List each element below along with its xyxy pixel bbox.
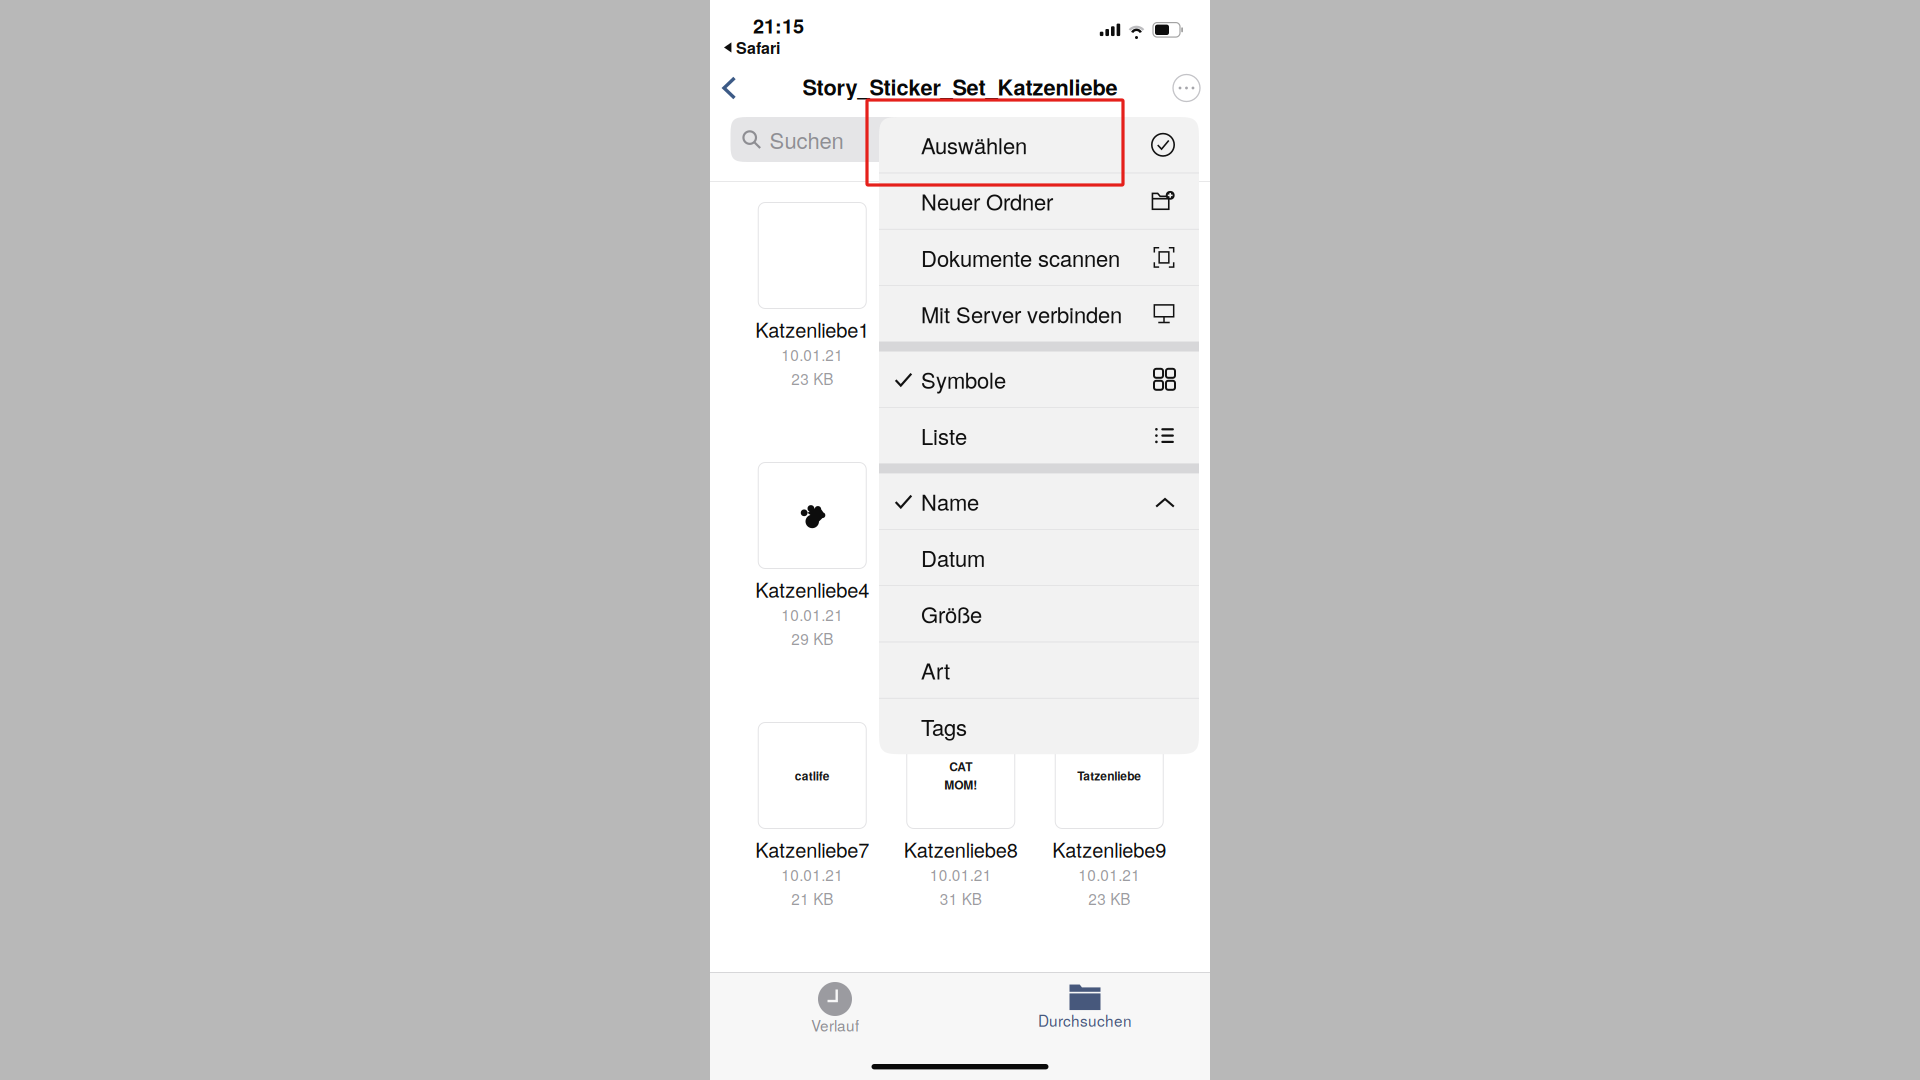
- staticText: Symbole: [921, 363, 1006, 395]
- button[interactable]: Katzenliebe1: [738, 202, 886, 462]
- staticText: Dokumente scannen: [921, 242, 1120, 273]
- staticText: 10.01.21: [781, 343, 843, 365]
- staticText: Durchsuchen: [1038, 1009, 1132, 1031]
- button[interactable]: catlife: [738, 722, 886, 982]
- staticText: 10.01.21: [930, 603, 992, 625]
- staticText: 21:15: [753, 11, 804, 40]
- staticText: Name: [921, 485, 979, 517]
- staticText: Tags: [921, 711, 967, 742]
- staticText: 23 KB: [1088, 887, 1130, 909]
- staticText: 10.01.21: [930, 343, 992, 365]
- button[interactable]: Mit Server verbinden: [879, 286, 1199, 341]
- staticText: 31 KB: [940, 887, 982, 909]
- button[interactable]: Dokumente scannen: [879, 230, 1199, 285]
- button[interactable]: Katzenliebe6: [1035, 462, 1183, 722]
- button[interactable]: Suchen: [730, 117, 1189, 162]
- staticText: Tatzenliebe: [1077, 767, 1141, 784]
- button[interactable]: Katzenliebe2: [886, 202, 1035, 462]
- staticText: 10.01.21: [1078, 343, 1140, 365]
- button[interactable]: Katzenliebe4: [738, 462, 886, 722]
- staticText: Katzenliebe7: [755, 835, 869, 863]
- staticText: Katzenliebe2: [904, 315, 1018, 343]
- button[interactable]: Datum: [879, 530, 1199, 585]
- button[interactable]: Durchsuchen: [960, 982, 1210, 1052]
- button[interactable]: Auswählen: [879, 117, 1199, 173]
- staticText: Story_Sticker_Set_Katzenliebe: [802, 71, 1117, 102]
- button[interactable]: Katzenliebe5: [886, 462, 1035, 722]
- staticText: Verlauf: [811, 1014, 859, 1036]
- staticText: 10.01.21: [930, 863, 992, 885]
- button[interactable]: Größe: [879, 586, 1199, 642]
- staticText: CAT: [949, 758, 972, 775]
- button[interactable]: Name: [879, 473, 1199, 529]
- button[interactable]: Back: [710, 64, 758, 112]
- button[interactable]: Tatzenliebe: [1035, 722, 1183, 982]
- staticText: 29 KB: [791, 627, 833, 649]
- button[interactable]: Symbole: [879, 351, 1199, 407]
- staticText: Größe: [921, 598, 982, 629]
- staticText: Katzenliebe3: [1052, 315, 1166, 343]
- button[interactable]: Katzenliebe3: [1035, 202, 1183, 462]
- button[interactable]: Liste: [879, 408, 1199, 463]
- staticText: MOM!: [944, 776, 977, 793]
- staticText: Auswählen: [921, 129, 1027, 160]
- staticText: 10.01.21: [781, 863, 843, 885]
- staticText: 18 KB: [940, 367, 982, 389]
- staticText: Katzenliebe4: [755, 575, 869, 603]
- button[interactable]: More options: [1160, 64, 1210, 112]
- staticText: Safari: [736, 36, 780, 59]
- staticText: Datum: [921, 542, 985, 573]
- button[interactable]: Verlauf: [710, 982, 960, 1052]
- staticText: Katzenliebe8: [904, 835, 1018, 863]
- staticText: catlife: [795, 767, 830, 784]
- staticText: 21 KB: [791, 887, 833, 909]
- staticText: Katzenliebe9: [1052, 835, 1166, 863]
- button[interactable]: CAT: [886, 722, 1035, 982]
- button[interactable]: Art: [879, 642, 1199, 698]
- staticText: Art: [921, 654, 950, 686]
- staticText: Suchen: [769, 124, 843, 155]
- staticText: 10.01.21: [781, 603, 843, 625]
- button[interactable]: Tags: [879, 699, 1199, 754]
- staticText: Neuer Ordner: [921, 185, 1053, 217]
- staticText: 10.01.21: [1078, 863, 1140, 885]
- staticText: Liste: [921, 420, 967, 451]
- staticText: 23 KB: [791, 367, 833, 389]
- staticText: Mit Server verbinden: [921, 298, 1122, 329]
- button[interactable]: Neuer Ordner: [879, 173, 1199, 229]
- staticText: Katzenliebe1: [755, 315, 869, 343]
